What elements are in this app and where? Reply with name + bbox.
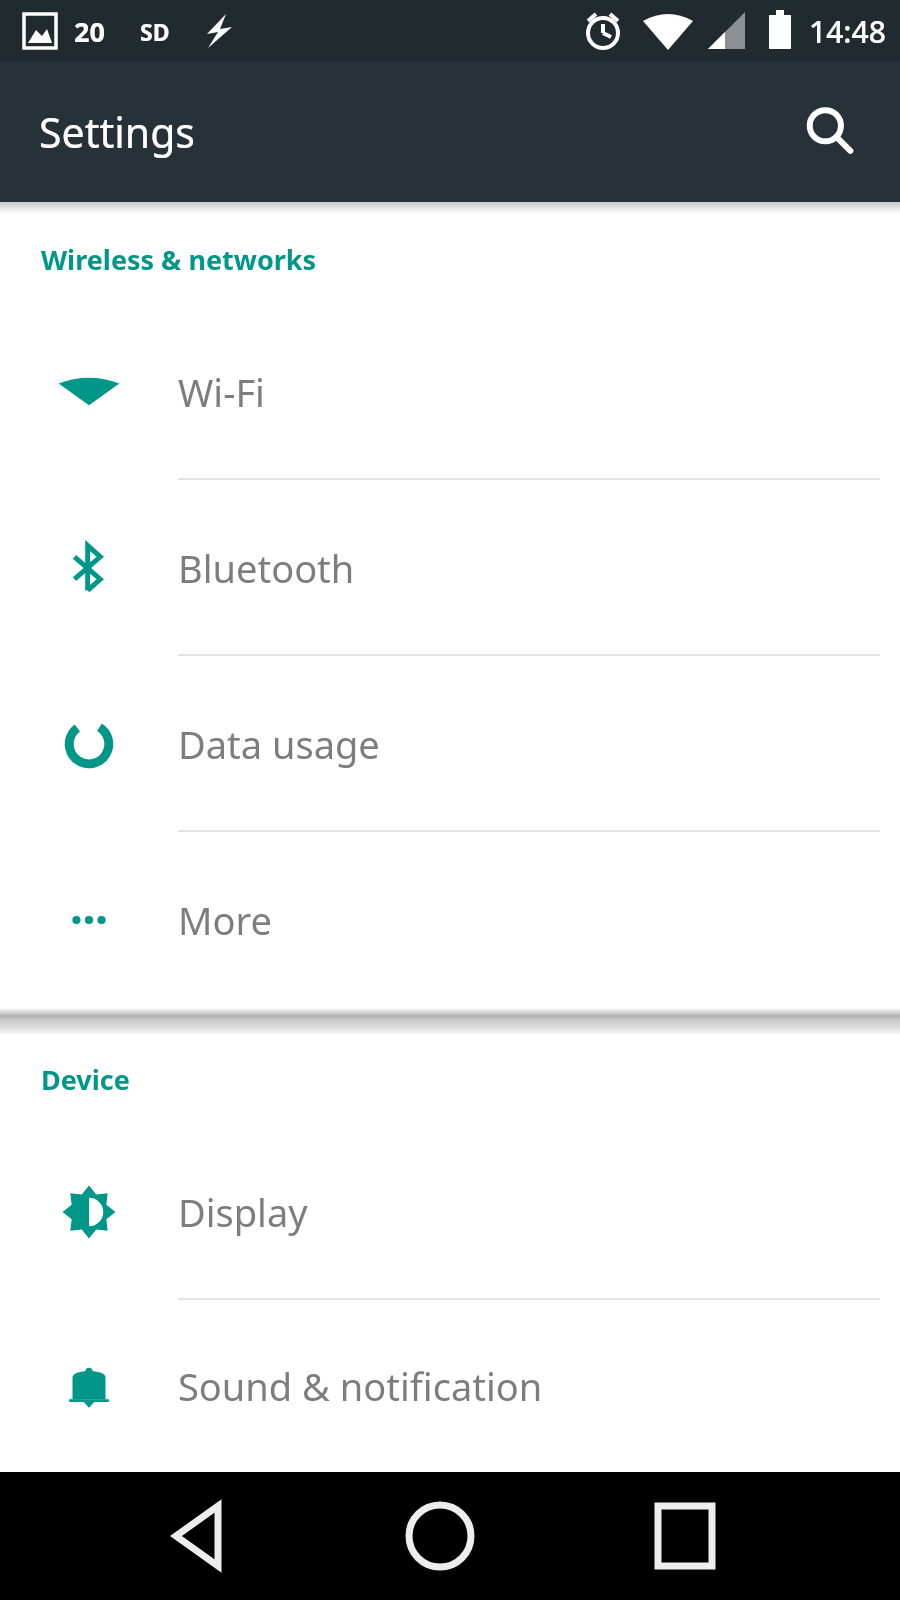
staticText: Data usage <box>178 718 380 770</box>
staticText: More <box>178 894 272 946</box>
staticText: Sound & notification <box>178 1360 543 1412</box>
staticText: Device <box>41 1061 130 1098</box>
button[interactable]: Bluetooth <box>0 480 900 656</box>
button[interactable]: Search <box>782 84 878 180</box>
staticText: Wireless & networks <box>41 241 317 278</box>
staticText: Bluetooth <box>178 542 355 594</box>
staticText: 20 <box>74 13 105 50</box>
staticText: Wi-Fi <box>178 366 265 418</box>
staticText: 14:48 <box>809 11 886 52</box>
button[interactable]: Home <box>380 1472 520 1600</box>
staticText: Display <box>178 1186 308 1238</box>
button[interactable]: Recent apps <box>615 1472 755 1600</box>
staticText: Settings <box>39 104 196 160</box>
staticText: SD <box>140 16 170 47</box>
button[interactable]: Data usage <box>0 656 900 832</box>
button[interactable]: Display <box>0 1124 900 1300</box>
button[interactable]: Wi-Fi <box>0 304 900 480</box>
button[interactable]: More <box>0 832 900 1008</box>
button[interactable]: Back <box>130 1472 270 1600</box>
button[interactable]: Sound & notification <box>0 1300 900 1472</box>
